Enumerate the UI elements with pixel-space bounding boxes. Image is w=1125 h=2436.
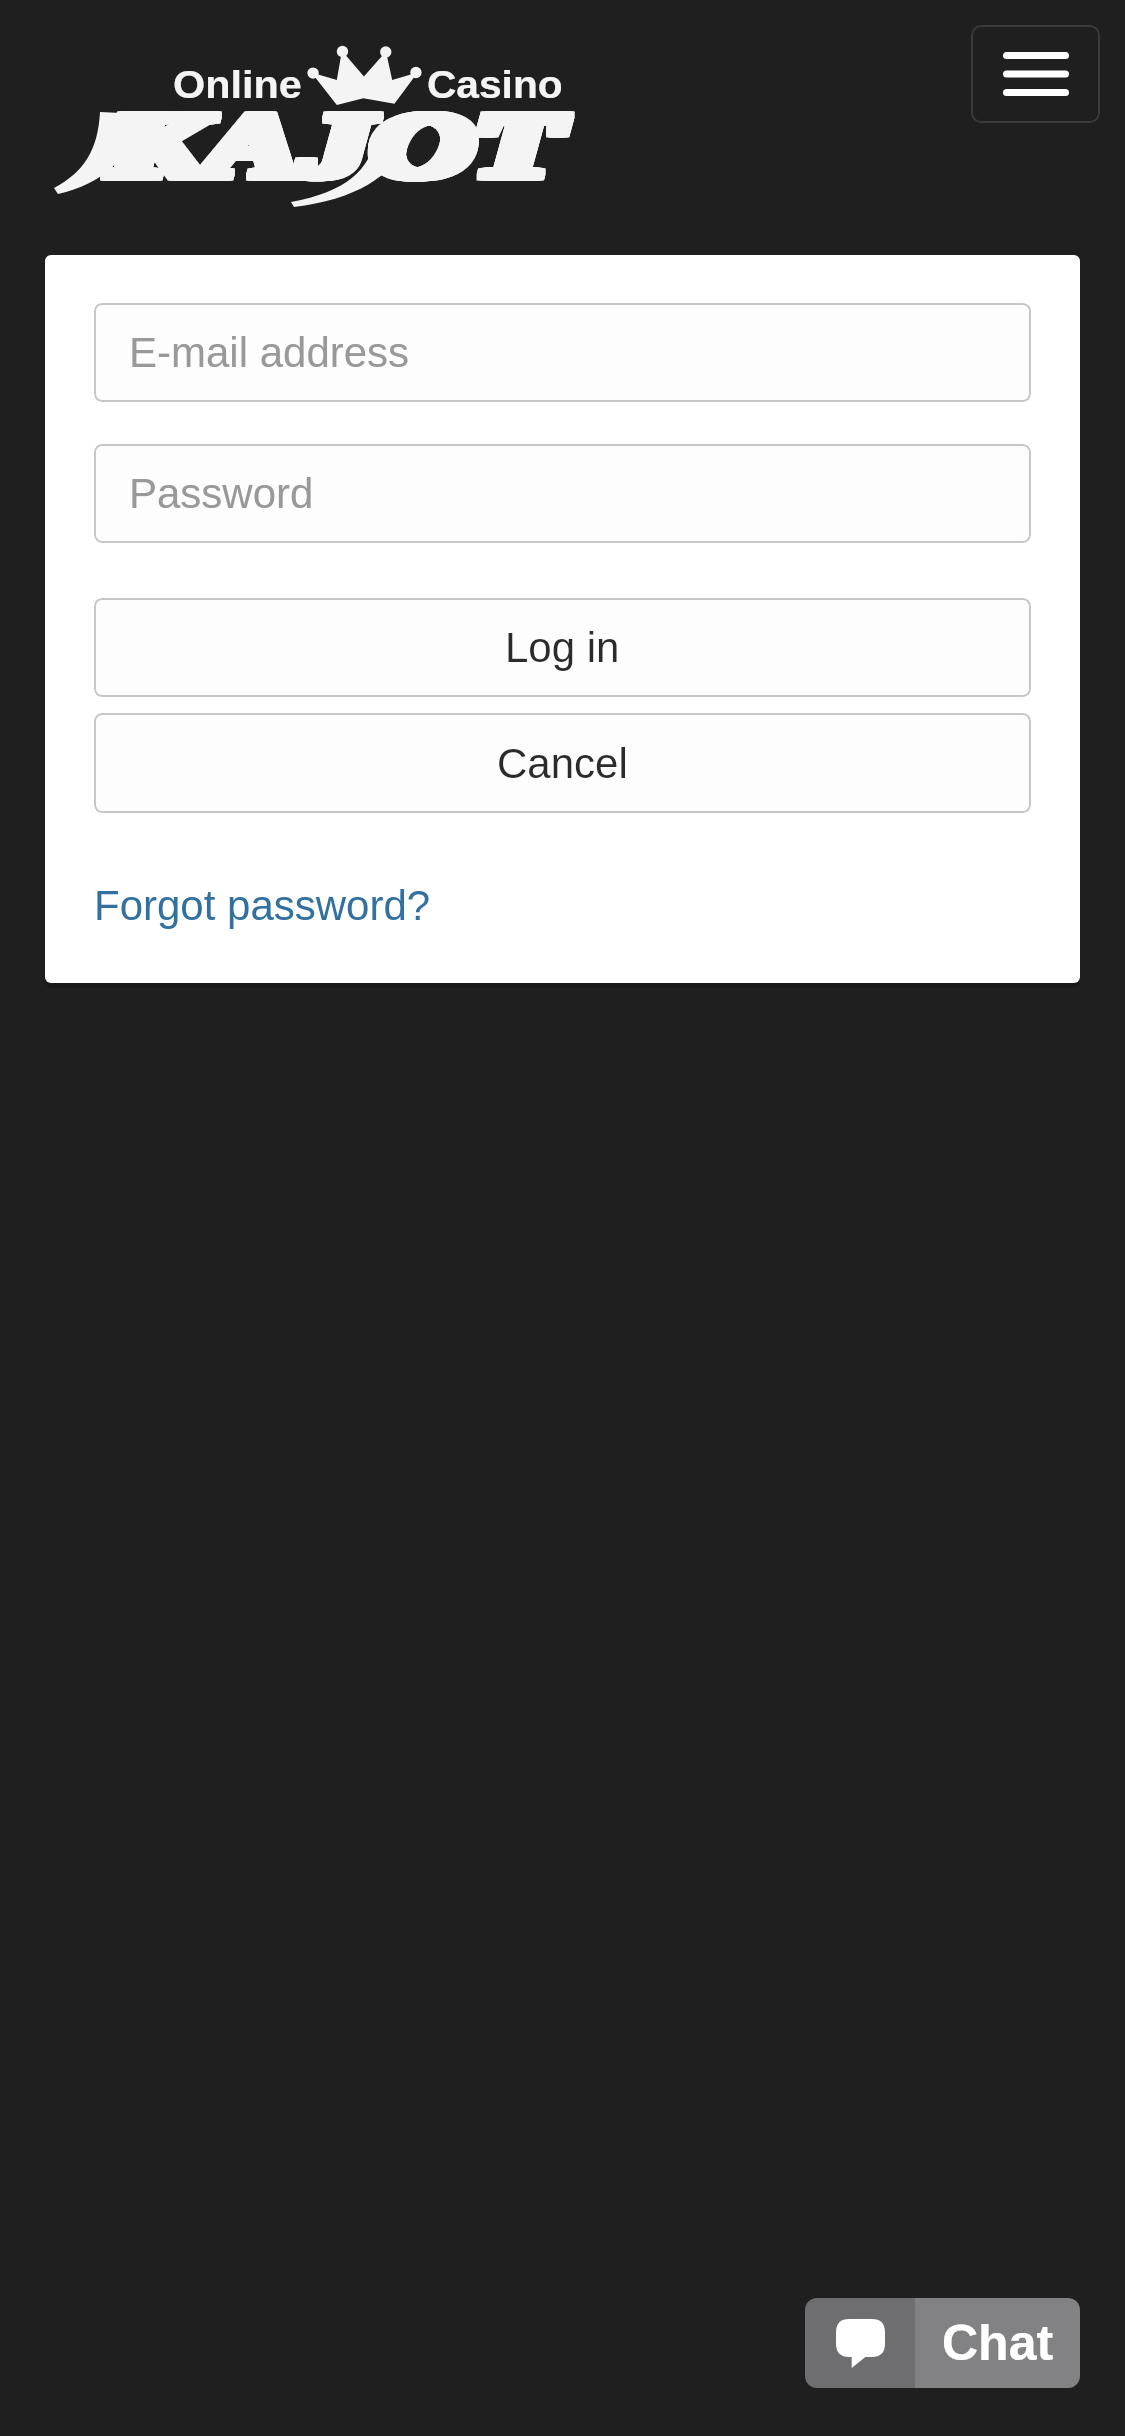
staticText: KAJOT	[110, 91, 562, 193]
staticText: KAJOT	[104, 91, 556, 193]
staticText: KAJOT	[116, 95, 568, 197]
staticText: Password	[129, 470, 314, 517]
staticText: KAJOT	[116, 91, 568, 193]
staticText: KAJOT	[105, 93, 557, 195]
staticText: KAJOT	[111, 93, 563, 195]
staticText: KAJOT	[111, 95, 563, 197]
staticText: Log in	[505, 624, 620, 671]
button[interactable]: E-mail address	[94, 303, 1031, 402]
staticText: E-mail address	[129, 329, 410, 376]
staticText: KAJOT	[115, 97, 567, 199]
staticText: KAJOT	[111, 91, 563, 193]
staticText: KAJOT	[115, 91, 567, 193]
button[interactable]: Password	[94, 444, 1031, 543]
staticText: Online	[173, 64, 303, 106]
staticText: KAJOT	[111, 92, 563, 194]
staticText: KAJOT	[108, 94, 560, 196]
staticText: KAJOT	[105, 92, 557, 194]
staticText: KAJOT	[105, 96, 557, 198]
button[interactable]: Forgot password?	[94, 882, 431, 929]
staticText: KAJOT	[108, 93, 560, 195]
staticText: Cancel	[497, 740, 628, 787]
staticText: KAJOT	[104, 94, 556, 196]
staticText: KAJOT	[108, 96, 560, 198]
staticText: KAJOT	[113, 93, 565, 195]
staticText: KAJOT	[104, 96, 556, 198]
staticText: KAJOT	[115, 95, 567, 197]
staticText: KAJOT	[116, 97, 568, 199]
staticText: KAJOT	[107, 94, 559, 196]
staticText: KAJOT	[107, 95, 559, 197]
staticText: KAJOT	[108, 91, 560, 193]
staticText: KAJOT	[105, 97, 557, 199]
staticText: KAJOT	[107, 91, 559, 193]
staticText: KAJOT	[108, 97, 560, 199]
button[interactable]: Log in	[94, 598, 1031, 697]
staticText: KAJOT	[110, 95, 562, 197]
staticText: KAJOT	[116, 96, 568, 198]
staticText: KAJOT	[108, 95, 560, 197]
staticText: Chat	[942, 2315, 1054, 2371]
staticText: KAJOT	[116, 93, 568, 195]
staticText: KAJOT	[104, 92, 556, 194]
button[interactable]: Cancel	[94, 713, 1031, 813]
staticText: KAJOT	[116, 94, 568, 196]
staticText: KAJOT	[113, 96, 565, 198]
button[interactable]: Open menu	[971, 25, 1100, 123]
staticText: KAJOT	[110, 94, 562, 196]
staticText: KAJOT	[113, 91, 565, 193]
staticText: KAJOT	[107, 92, 559, 194]
staticText: KAJOT	[105, 91, 557, 193]
staticText: KAJOT	[115, 94, 567, 196]
staticText: KAJOT	[110, 97, 562, 199]
staticText: KAJOT	[105, 95, 557, 197]
staticText: KAJOT	[116, 92, 568, 194]
staticText: Casino	[427, 64, 563, 106]
staticText: KAJOT	[111, 96, 563, 198]
staticText: KAJOT	[107, 96, 559, 198]
staticText: KAJOT	[113, 92, 565, 194]
staticText: KAJOT	[107, 93, 559, 195]
staticText: KAJOT	[110, 93, 562, 195]
staticText: KAJOT	[115, 92, 567, 194]
staticText: KAJOT	[110, 92, 562, 194]
staticText: KAJOT	[115, 93, 567, 195]
staticText: KAJOT	[113, 97, 565, 199]
staticText: KAJOT	[104, 93, 556, 195]
button[interactable]: Chat	[805, 2298, 1080, 2388]
staticText: KAJOT	[104, 97, 556, 199]
staticText: KAJOT	[105, 94, 557, 196]
staticText: KAJOT	[110, 96, 562, 198]
staticText: KAJOT	[113, 94, 565, 196]
staticText: KAJOT	[113, 95, 565, 197]
staticText: Forgot password?	[94, 882, 431, 929]
staticText: KAJOT	[111, 94, 563, 196]
staticText: KAJOT	[104, 95, 556, 197]
staticText: KAJOT	[111, 97, 563, 199]
staticText: KAJOT	[107, 97, 559, 199]
staticText: KAJOT	[108, 92, 560, 194]
staticText: KAJOT	[115, 96, 567, 198]
